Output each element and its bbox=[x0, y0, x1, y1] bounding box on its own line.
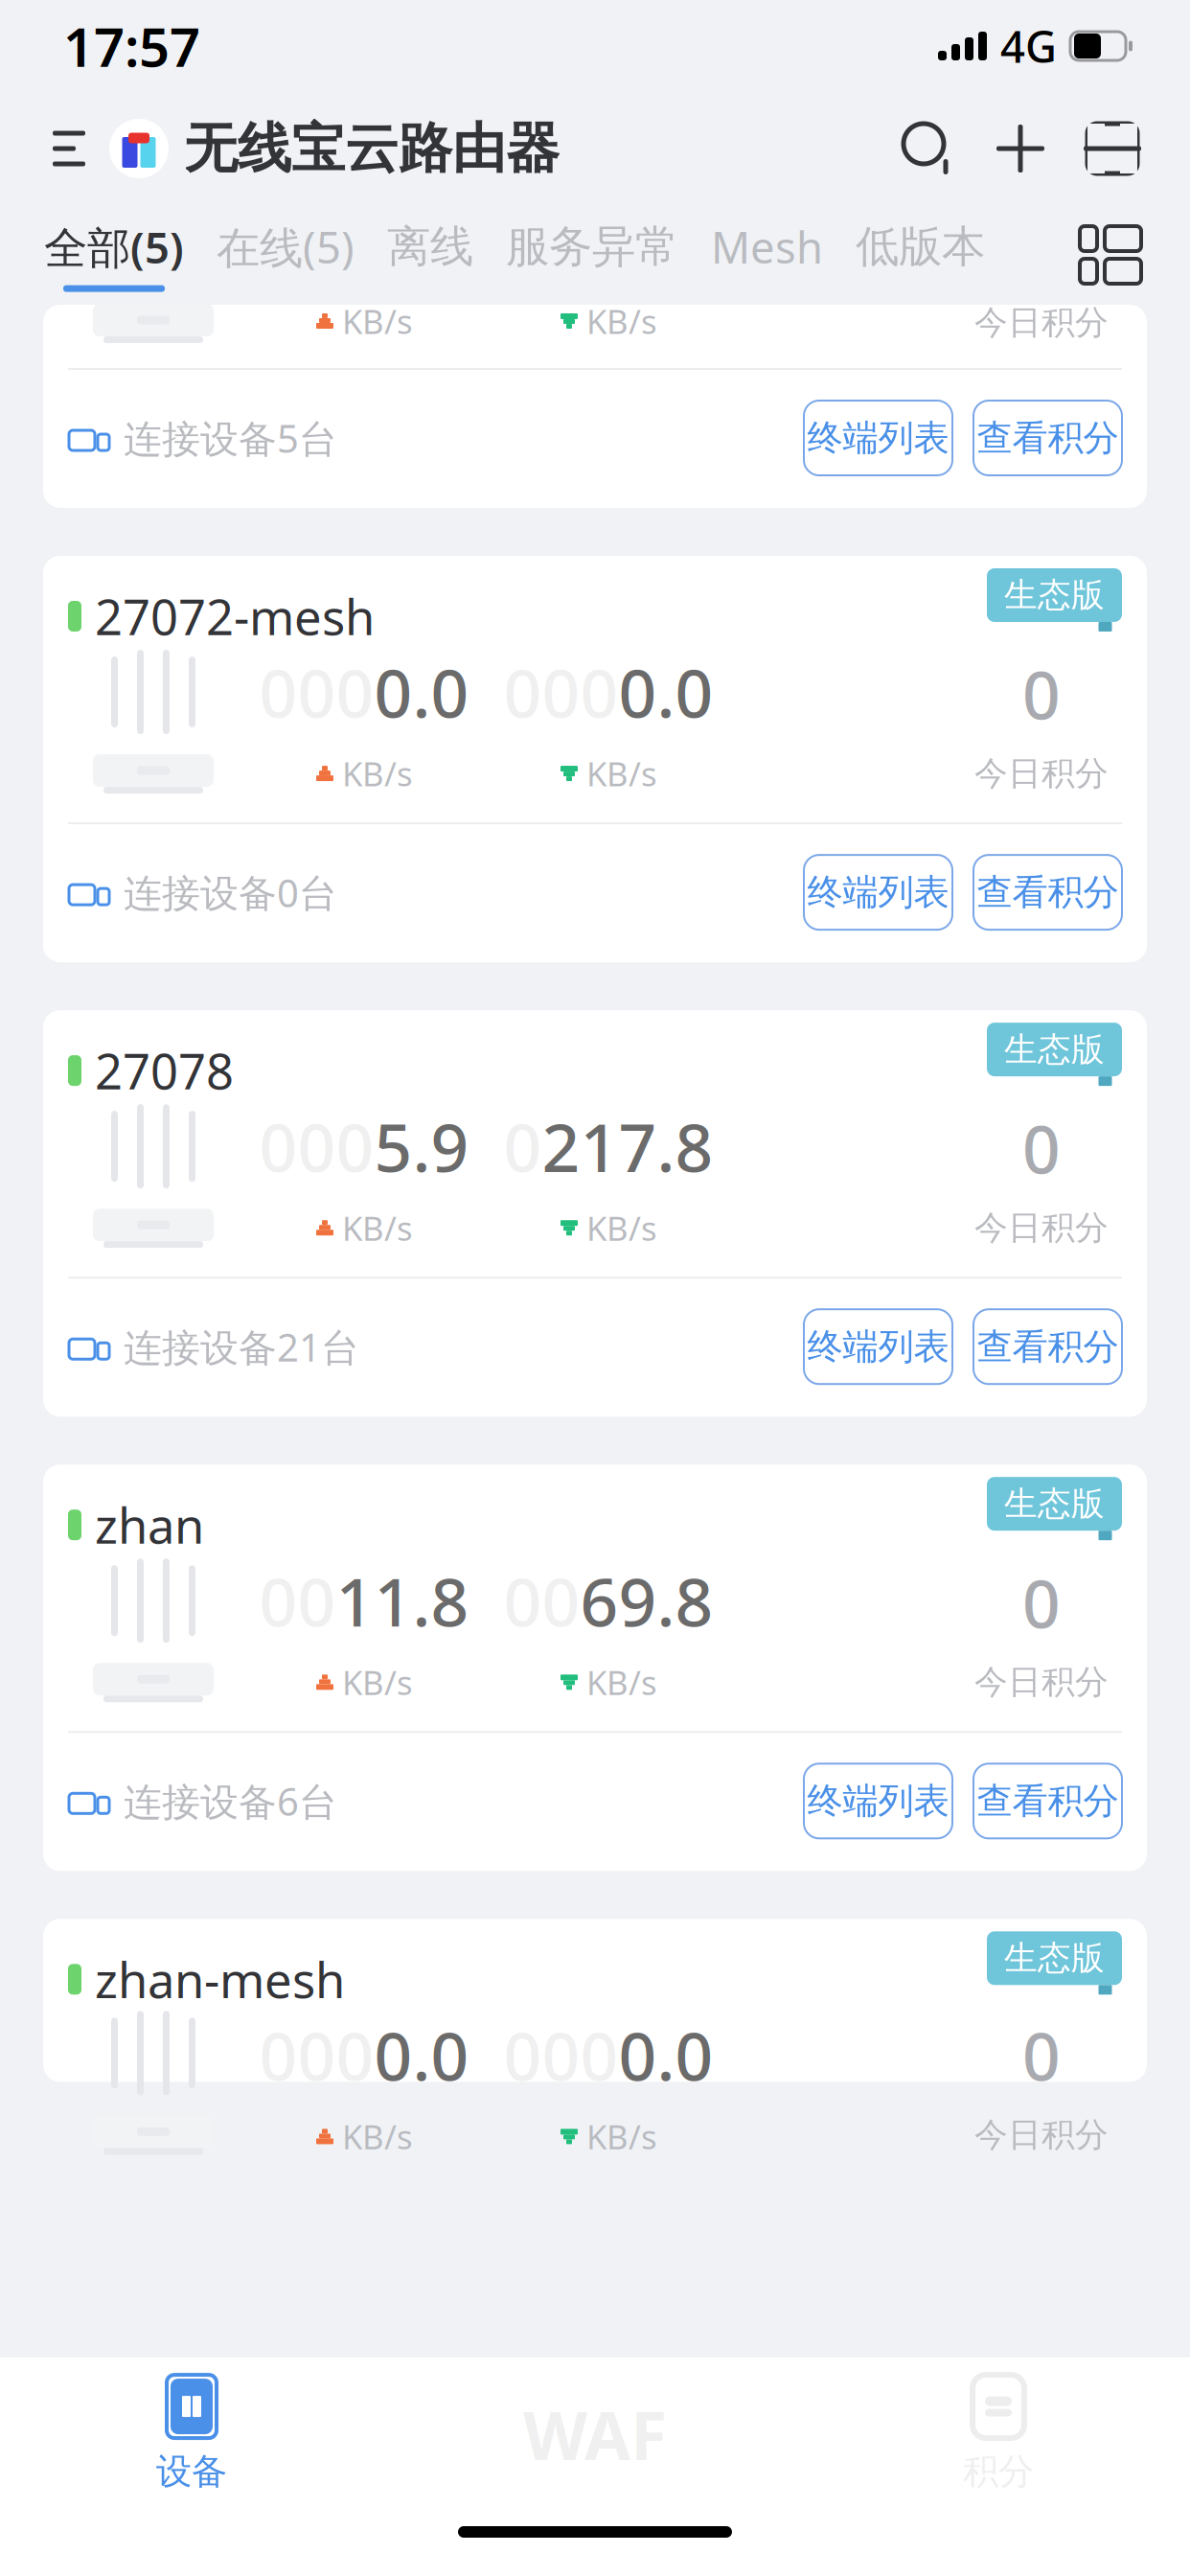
button[interactable]: 全部(5) bbox=[0, 218, 184, 292]
button[interactable]: 终端列表 bbox=[804, 1764, 952, 1838]
staticText: 积分 bbox=[963, 2450, 1034, 2494]
staticText: zhan bbox=[95, 1493, 204, 1557]
staticText: KB/s bbox=[586, 1660, 657, 1704]
staticText: 0.0 bbox=[374, 2011, 469, 2099]
staticText: 11.8 bbox=[336, 1557, 469, 1645]
staticText: 217.8 bbox=[542, 1102, 713, 1190]
staticText: 终端列表 bbox=[807, 1779, 949, 1823]
staticText: 终端列表 bbox=[807, 416, 949, 460]
staticText: 终端列表 bbox=[807, 1325, 949, 1369]
staticText: 000 bbox=[259, 1102, 374, 1190]
staticText: 000 bbox=[259, 2011, 374, 2099]
staticText: KB/s bbox=[342, 2114, 413, 2159]
staticText: 低版本 bbox=[856, 220, 985, 274]
staticText: 全部(5) bbox=[44, 218, 184, 276]
staticText: 27072-mesh bbox=[95, 584, 375, 649]
staticText: 5.9 bbox=[374, 1102, 469, 1190]
button[interactable]: Mesh bbox=[678, 218, 823, 292]
staticText: 0 bbox=[1022, 1104, 1061, 1192]
staticText: WAF bbox=[523, 2390, 667, 2478]
staticText: KB/s bbox=[586, 299, 657, 343]
button[interactable]: 终端列表 bbox=[804, 855, 952, 930]
button[interactable]: 查看积分 bbox=[973, 1764, 1122, 1838]
staticText: 0 bbox=[503, 1102, 542, 1190]
staticText: 生态版 bbox=[1004, 1938, 1105, 1979]
staticText: 查看积分 bbox=[977, 416, 1119, 460]
staticText: 生态版 bbox=[1004, 1029, 1105, 1070]
staticText: 27078 bbox=[95, 1038, 234, 1103]
staticText: 连接设备6台 bbox=[124, 1776, 337, 1826]
button[interactable]: 设备 bbox=[77, 2375, 307, 2494]
staticText: 17:57 bbox=[63, 10, 200, 82]
staticText: 000 bbox=[259, 648, 374, 736]
staticText: 连接设备21台 bbox=[124, 1321, 359, 1372]
staticText: 今日积分 bbox=[974, 1662, 1109, 1703]
button[interactable]: 离线 bbox=[355, 220, 473, 290]
staticText: 连接设备5台 bbox=[124, 412, 337, 463]
staticText: 0 bbox=[1022, 2011, 1061, 2099]
staticText: 服务异常 bbox=[506, 220, 678, 274]
button[interactable]: 低版本 bbox=[823, 220, 985, 290]
staticText: KB/s bbox=[586, 751, 657, 796]
staticText: KB/s bbox=[586, 2114, 657, 2159]
staticText: 4G bbox=[1000, 17, 1057, 75]
button[interactable]: 扫一扫 bbox=[1081, 117, 1144, 180]
staticText: 00 bbox=[503, 1557, 580, 1645]
staticText: 终端列表 bbox=[807, 870, 949, 914]
button[interactable]: 连接设备6台 bbox=[68, 1776, 337, 1826]
staticText: 连接设备0台 bbox=[124, 867, 337, 918]
staticText: Mesh bbox=[711, 218, 823, 276]
staticText: KB/s bbox=[342, 1660, 413, 1704]
staticText: 生态版 bbox=[1004, 575, 1105, 616]
button[interactable]: 连接设备5台 bbox=[68, 412, 337, 463]
staticText: KB/s bbox=[342, 299, 413, 343]
staticText: 今日积分 bbox=[974, 753, 1109, 794]
staticText: 查看积分 bbox=[977, 1779, 1119, 1823]
staticText: 在线(5) bbox=[217, 218, 355, 276]
staticText: 0 bbox=[1022, 1558, 1061, 1646]
staticText: 0.0 bbox=[374, 648, 469, 736]
staticText: 000 bbox=[503, 195, 618, 284]
button[interactable]: 菜单 bbox=[44, 122, 94, 175]
staticText: 今日积分 bbox=[974, 2114, 1109, 2155]
button[interactable]: 连接设备21台 bbox=[68, 1321, 359, 1372]
button[interactable]: 终端列表 bbox=[804, 1309, 952, 1384]
staticText: 0 bbox=[1022, 649, 1061, 738]
staticText: 生态版 bbox=[1004, 1483, 1105, 1524]
staticText: KB/s bbox=[342, 751, 413, 796]
staticText: 查看积分 bbox=[977, 1325, 1119, 1369]
staticText: 今日积分 bbox=[974, 302, 1109, 343]
staticText: 0.0 bbox=[618, 2011, 713, 2099]
button[interactable]: 在线(5) bbox=[184, 218, 355, 292]
staticText: 0.0 bbox=[618, 648, 713, 736]
button[interactable]: 积分 bbox=[883, 2375, 1113, 2494]
staticText: 00 bbox=[259, 1557, 336, 1645]
button[interactable]: 切换视图 bbox=[1069, 214, 1152, 296]
button[interactable]: 查看积分 bbox=[973, 1309, 1122, 1384]
staticText: 无线宝云路由器 bbox=[184, 116, 560, 182]
staticText: 0.0 bbox=[618, 195, 713, 284]
staticText: 69.8 bbox=[580, 1557, 713, 1645]
staticText: 000 bbox=[503, 648, 618, 736]
staticText: 离线 bbox=[387, 220, 473, 274]
staticText: 设备 bbox=[156, 2450, 227, 2494]
button[interactable]: 添加设备 bbox=[989, 117, 1052, 180]
staticText: 000 bbox=[503, 2011, 618, 2099]
button[interactable]: 连接设备0台 bbox=[68, 867, 337, 918]
staticText: 000 bbox=[259, 195, 374, 284]
button[interactable]: 查看积分 bbox=[973, 401, 1122, 475]
staticText: 0.0 bbox=[374, 195, 469, 284]
staticText: KB/s bbox=[586, 1206, 657, 1250]
staticText: zhan-mesh bbox=[95, 1947, 345, 2012]
button[interactable]: 查看积分 bbox=[973, 855, 1122, 930]
staticText: KB/s bbox=[342, 1206, 413, 1250]
button[interactable]: 搜索 bbox=[897, 117, 960, 180]
staticText: 今日积分 bbox=[974, 1207, 1109, 1248]
staticText: 查看积分 bbox=[977, 870, 1119, 914]
button[interactable]: 终端列表 bbox=[804, 401, 952, 475]
button[interactable]: 服务异常 bbox=[473, 220, 678, 290]
